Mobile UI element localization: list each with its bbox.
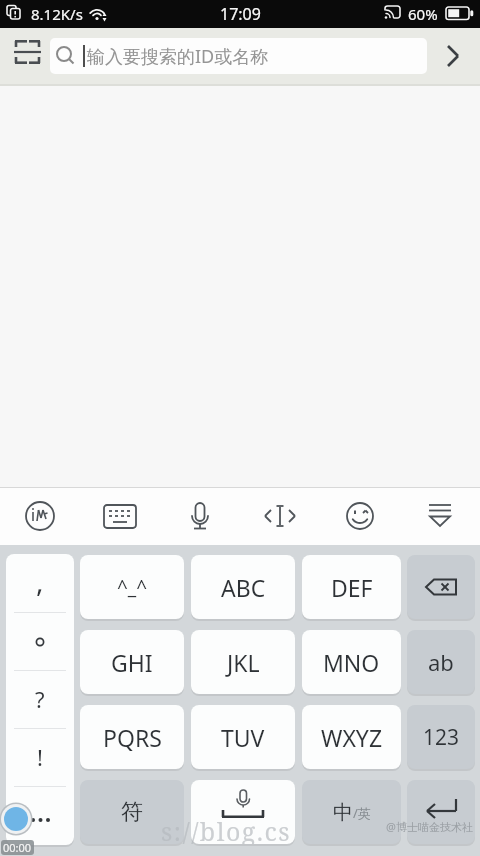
button[interactable]: TUV <box>191 705 295 769</box>
staticText: 123 <box>423 723 460 752</box>
button[interactable]: 123 <box>407 705 475 769</box>
button[interactable]: JKL <box>191 630 295 694</box>
staticText: 00:00 <box>3 840 32 855</box>
staticText: 8.12K/s <box>31 4 83 24</box>
staticText: GHI <box>111 647 153 678</box>
staticText: ABC <box>221 572 266 603</box>
button[interactable]: DEF <box>302 555 401 619</box>
button[interactable]: 中 <box>302 780 401 844</box>
button[interactable]: WXYZ <box>302 705 401 769</box>
staticText: 符 <box>121 798 143 826</box>
button[interactable] <box>191 780 295 844</box>
staticText: 中 <box>333 800 353 825</box>
staticText: ab <box>428 647 454 677</box>
button[interactable] <box>10 488 70 545</box>
staticText: @博士喵金技术社区 <box>386 819 480 835</box>
button[interactable] <box>407 555 475 619</box>
staticText: DEF <box>331 572 373 603</box>
staticText: MNO <box>323 647 380 678</box>
button[interactable]: MNO <box>302 630 401 694</box>
button[interactable] <box>407 780 475 844</box>
staticText: 输入要搜索的ID或名称 <box>87 44 269 69</box>
staticText: TUV <box>221 722 265 753</box>
staticText: JKL <box>227 647 260 678</box>
staticText: , <box>36 562 44 600</box>
button[interactable] <box>330 488 390 545</box>
button[interactable] <box>0 28 50 86</box>
staticText: s://blog.cs <box>161 814 292 844</box>
button[interactable] <box>430 28 480 86</box>
button[interactable] <box>90 488 150 545</box>
staticText: ? <box>35 684 45 714</box>
button[interactable] <box>250 488 310 545</box>
button[interactable]: ABC <box>191 555 295 619</box>
button[interactable] <box>6 554 74 845</box>
button[interactable] <box>50 38 427 74</box>
button[interactable]: ab <box>407 630 475 694</box>
button[interactable] <box>410 488 470 545</box>
staticText: PQRS <box>103 722 162 753</box>
button[interactable]: ^_^ <box>80 555 184 619</box>
button[interactable]: 符 <box>80 780 184 844</box>
staticText: WXYZ <box>321 722 383 753</box>
staticText: /英 <box>353 804 371 822</box>
button[interactable]: GHI <box>80 630 184 694</box>
button[interactable] <box>170 488 230 545</box>
staticText: 60% <box>408 4 438 24</box>
staticText: ^_^ <box>117 574 148 600</box>
staticText: ! <box>37 742 43 772</box>
staticText: 17:09 <box>220 3 261 25</box>
button[interactable]: PQRS <box>80 705 184 769</box>
